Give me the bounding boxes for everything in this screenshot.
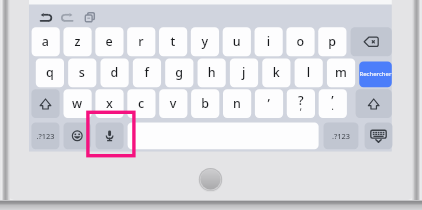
button[interactable]: [0, 0, 422, 210]
